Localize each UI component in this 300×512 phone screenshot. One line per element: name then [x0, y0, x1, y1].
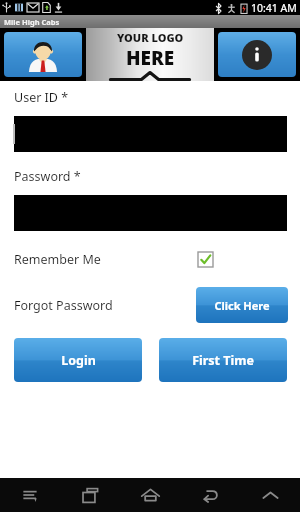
button[interactable]: Login: [14, 338, 142, 382]
staticText: HERE: [126, 45, 175, 71]
staticText: 10:41 AM: [251, 1, 297, 15]
button[interactable]: Home: [120, 478, 180, 512]
staticText: Forgot Password: [14, 297, 113, 314]
staticText: Remember Me: [14, 251, 101, 268]
staticText: Mile High Cabs: [4, 17, 60, 27]
button[interactable]: Menu: [0, 478, 60, 512]
button[interactable]: Remember Me checkbox: [198, 252, 213, 267]
staticText: First Time: [192, 352, 254, 369]
staticText: Click Here: [214, 298, 270, 313]
button[interactable]: Back: [180, 478, 240, 512]
button[interactable]: Information: [214, 28, 300, 81]
button[interactable]: Expand: [240, 478, 300, 512]
staticText: Login: [61, 352, 96, 369]
button[interactable]: Logo: [86, 28, 214, 81]
button[interactable]: Click Here: [196, 287, 288, 323]
button[interactable]: First Time: [159, 338, 287, 382]
button[interactable]: Account: [0, 28, 86, 81]
button[interactable]: User ID field: [14, 116, 287, 152]
button[interactable]: Recent apps: [60, 478, 120, 512]
staticText: YOUR LOGO: [117, 30, 184, 45]
staticText: User ID *: [14, 89, 69, 106]
staticText: Password *: [14, 168, 81, 185]
